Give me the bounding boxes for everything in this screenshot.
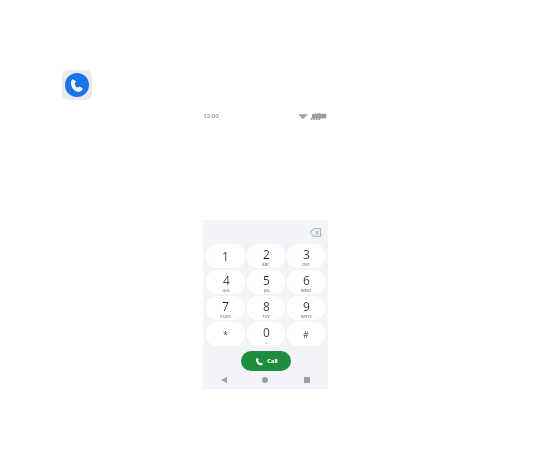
staticText: 2 <box>263 246 270 262</box>
button[interactable]: 4 <box>206 270 245 294</box>
staticText: # <box>303 328 309 340</box>
button[interactable]: Back <box>203 371 244 389</box>
button[interactable]: # <box>287 322 325 346</box>
button[interactable]: 8 <box>247 296 285 320</box>
button[interactable]: 6 <box>287 270 325 294</box>
staticText: MNO <box>301 288 311 293</box>
button[interactable]: Call <box>241 351 291 371</box>
staticText: 12:00 <box>203 112 219 120</box>
staticText: 8 <box>263 298 270 314</box>
staticText: DEF <box>302 262 310 267</box>
staticText: TUV <box>262 314 270 319</box>
staticText: JKL <box>264 288 270 293</box>
button[interactable]: 7 <box>206 296 245 320</box>
staticText: 6 <box>303 272 310 288</box>
staticText: * <box>223 328 228 340</box>
button[interactable]: 3 <box>287 244 325 268</box>
staticText: 1 <box>222 248 229 264</box>
staticText: WXYZ <box>301 314 312 319</box>
staticText: + <box>265 340 268 345</box>
staticText: 7 <box>222 298 229 314</box>
button[interactable]: 0 <box>247 322 285 346</box>
staticText: Call <box>267 357 278 365</box>
staticText: 0 <box>263 324 270 340</box>
staticText: GHI <box>222 288 230 293</box>
button[interactable]: * <box>206 322 245 346</box>
staticText: 4 <box>223 272 230 288</box>
button[interactable]: Recent apps <box>286 371 328 389</box>
button[interactable]: Home <box>244 371 286 389</box>
button[interactable]: Phone app <box>62 70 92 100</box>
button[interactable]: Backspace <box>308 225 322 239</box>
staticText: PQRS <box>220 314 231 319</box>
button[interactable]: 9 <box>287 296 325 320</box>
staticText: 3 <box>303 246 310 262</box>
button[interactable]: 1 <box>206 244 245 268</box>
staticText: 9 <box>303 298 310 314</box>
staticText: 5 <box>263 272 270 288</box>
button[interactable]: 2 <box>247 244 285 268</box>
staticText: ABC <box>262 262 270 267</box>
button[interactable]: 5 <box>247 270 285 294</box>
